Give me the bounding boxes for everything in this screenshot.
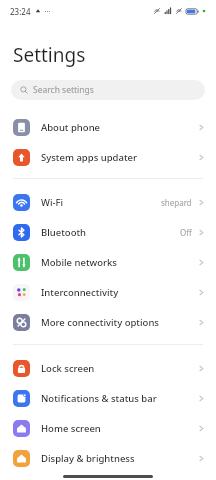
staticText: Lock screen — [41, 362, 95, 375]
staticText: Wi-Fi — [41, 196, 64, 209]
staticText: Interconnectivity — [41, 286, 119, 299]
button[interactable]: Bluetooth — [0, 217, 216, 247]
button[interactable]: About phone — [0, 112, 216, 142]
button[interactable]: Notifications & status bar — [0, 383, 216, 413]
button[interactable]: Mobile networks — [0, 247, 216, 277]
button[interactable]: More connectivity options — [0, 307, 216, 337]
button[interactable]: Home screen — [0, 413, 216, 443]
staticText: Settings — [13, 42, 86, 68]
staticText: Off — [180, 227, 192, 238]
staticText: Mobile networks — [41, 256, 117, 269]
button[interactable]: Lock screen — [0, 353, 216, 383]
button[interactable]: Display & brightness — [0, 443, 216, 473]
staticText: shepard — [161, 197, 192, 208]
button[interactable]: System apps updater — [0, 142, 216, 172]
button[interactable]: Search settings — [11, 80, 205, 100]
staticText: Notifications & status bar — [41, 392, 157, 405]
staticText: System apps updater — [41, 151, 137, 164]
button[interactable]: Interconnectivity — [0, 277, 216, 307]
staticText: Display & brightness — [41, 452, 135, 465]
button[interactable]: Wi-Fi — [0, 187, 216, 217]
staticText: Home screen — [41, 422, 101, 435]
staticText: 23:24 — [10, 6, 31, 17]
staticText: Bluetooth — [41, 226, 87, 239]
staticText: More connectivity options — [41, 316, 159, 329]
staticText: Search settings — [33, 84, 94, 96]
staticText: About phone — [41, 121, 101, 134]
